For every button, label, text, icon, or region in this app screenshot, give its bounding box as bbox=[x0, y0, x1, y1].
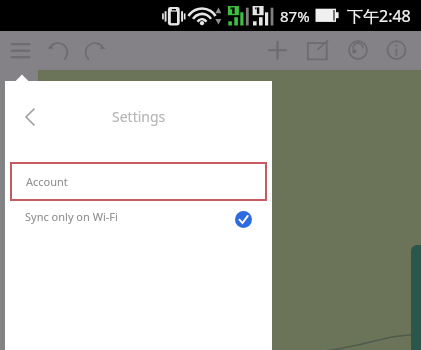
button[interactable]: Account bbox=[10, 162, 267, 201]
staticText: Sync only on Wi-Fi bbox=[25, 209, 118, 224]
button[interactable]: Redo bbox=[81, 31, 109, 70]
staticText: Account bbox=[26, 174, 68, 189]
button[interactable]: Add bbox=[264, 31, 292, 70]
staticText: 87% bbox=[280, 6, 310, 26]
button[interactable]: Back bbox=[10, 97, 50, 137]
staticText: 下午2:48 bbox=[347, 5, 411, 27]
button[interactable]: Edit bbox=[304, 31, 332, 70]
button[interactable]: Brightness bbox=[344, 31, 372, 70]
button[interactable]: Undo bbox=[44, 31, 72, 70]
button[interactable]: Info bbox=[382, 31, 410, 70]
button[interactable]: Menu bbox=[4, 31, 37, 70]
staticText: Settings bbox=[112, 107, 166, 126]
button[interactable]: Sync only on Wi-Fi bbox=[25, 201, 252, 236]
